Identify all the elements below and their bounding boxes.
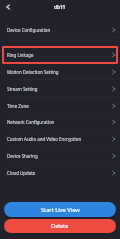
staticText: Stream Setting xyxy=(7,86,112,92)
staticText: db11 xyxy=(54,4,66,11)
staticText: Motion Detection Setting xyxy=(7,69,112,75)
staticText: Cloud Update xyxy=(7,170,112,176)
staticText: Start Live View xyxy=(41,206,80,214)
staticText: Ring Linkage xyxy=(7,52,112,58)
button[interactable]: Ring Linkage xyxy=(0,46,120,63)
staticText: Delete xyxy=(51,222,69,230)
staticText: Device Configuration xyxy=(7,27,112,33)
button[interactable]: Cloud Update xyxy=(0,164,120,181)
button[interactable]: Custom Audio and Video Encryption xyxy=(0,130,120,147)
staticText: Device Sharing xyxy=(7,153,112,159)
button[interactable]: Delete xyxy=(4,219,116,233)
button[interactable]: Back xyxy=(0,0,14,14)
button[interactable]: Network Configuration xyxy=(0,113,120,130)
staticText: Custom Audio and Video Encryption xyxy=(7,136,112,142)
button[interactable]: Time Zone xyxy=(0,97,120,114)
staticText: Time Zone xyxy=(7,103,112,109)
button[interactable]: Stream Setting xyxy=(0,80,120,97)
staticText: Network Configuration xyxy=(7,119,112,125)
button[interactable]: Motion Detection Setting xyxy=(0,63,120,80)
button[interactable]: Start Live View xyxy=(4,202,116,217)
button[interactable]: Device Configuration xyxy=(0,21,120,38)
button[interactable]: Device Sharing xyxy=(0,147,120,164)
